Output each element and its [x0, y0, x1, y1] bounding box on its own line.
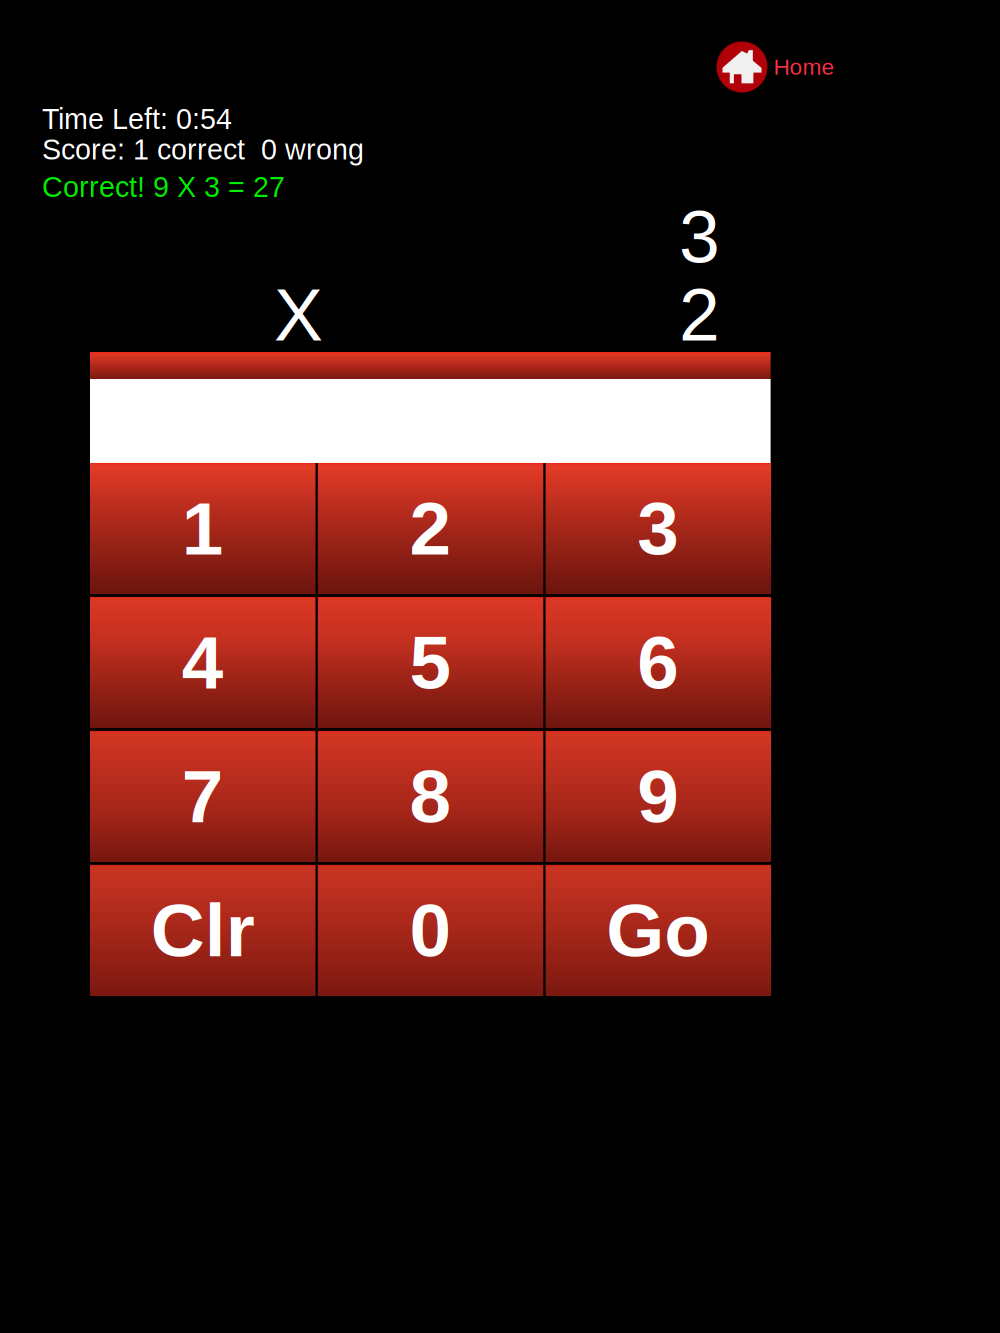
staticText: 6 — [637, 621, 679, 704]
button[interactable]: Home — [716, 41, 837, 93]
staticText: 0 — [410, 889, 452, 972]
button[interactable]: 9 — [546, 731, 771, 862]
staticText: 3 — [637, 487, 679, 570]
staticText: 2 — [410, 487, 452, 570]
staticText: Clr — [151, 889, 255, 972]
button[interactable]: Go — [546, 865, 771, 996]
staticText: 8 — [410, 755, 452, 838]
button[interactable]: 8 — [318, 731, 543, 862]
staticText: 1 — [182, 487, 224, 570]
button[interactable]: 5 — [318, 597, 543, 728]
button[interactable]: 1 — [90, 463, 315, 594]
staticText: 5 — [410, 621, 452, 704]
staticText: Time Left: 0:54 — [42, 103, 232, 135]
staticText: 2 — [679, 274, 720, 356]
staticText: 7 — [182, 755, 224, 838]
button[interactable]: 2 — [318, 463, 543, 594]
button[interactable]: 4 — [90, 597, 315, 728]
staticText: X — [274, 274, 323, 356]
button[interactable]: 6 — [546, 597, 771, 728]
staticText: 3 — [679, 196, 720, 278]
staticText: Score: 1 correct 0 wrong — [42, 133, 364, 165]
staticText: Correct! 9 X 3 = 27 — [42, 171, 285, 203]
button[interactable]: 0 — [318, 865, 543, 996]
button[interactable]: 7 — [90, 731, 315, 862]
button[interactable]: Clr — [90, 865, 315, 996]
button[interactable]: 3 — [546, 463, 771, 594]
staticText: Go — [606, 889, 710, 972]
staticText: 4 — [182, 621, 224, 704]
staticText: 9 — [637, 755, 679, 838]
staticText: Home — [773, 54, 834, 80]
